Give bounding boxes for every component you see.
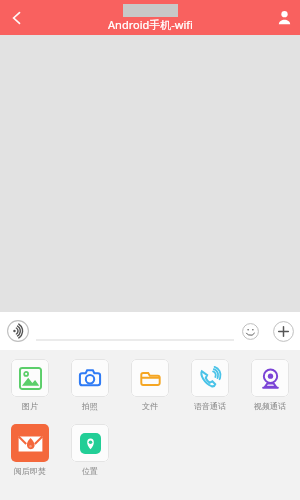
button[interactable]: Back <box>0 0 34 35</box>
button[interactable]: 拍照 <box>60 357 120 413</box>
button[interactable]: 阅后即焚 <box>0 422 60 478</box>
staticText: 阅后即焚 <box>14 466 46 476</box>
button[interactable]: 文件 <box>120 357 180 413</box>
staticText: 图片 <box>22 401 38 411</box>
staticText: Android手机-wifi <box>108 17 193 32</box>
button[interactable]: Contact profile <box>268 0 300 35</box>
staticText: 文件 <box>142 401 158 411</box>
staticText: 视频通话 <box>254 401 286 411</box>
staticText: 位置 <box>82 466 98 476</box>
button[interactable]: 语音通话 <box>180 357 240 413</box>
button[interactable]: 视频通话 <box>240 357 300 413</box>
button[interactable] <box>36 312 234 350</box>
button[interactable]: Voice message <box>0 312 36 350</box>
button[interactable]: 图片 <box>0 357 60 413</box>
button[interactable]: More attachments <box>266 312 300 350</box>
button[interactable]: 位置 <box>60 422 120 478</box>
button[interactable]: Emoji <box>234 312 266 350</box>
staticText: 拍照 <box>82 401 98 411</box>
staticText: 语音通话 <box>194 401 226 411</box>
